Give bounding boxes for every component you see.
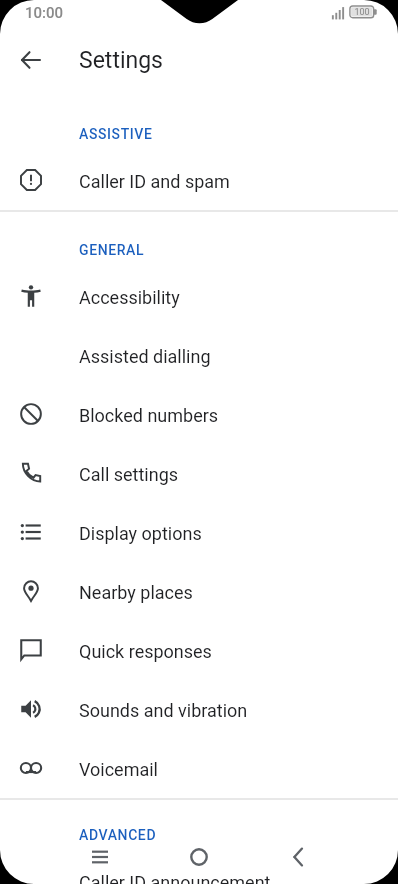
button[interactable]: Back	[7, 36, 55, 84]
staticText: Caller ID and spam	[79, 171, 230, 192]
staticText: Blocked numbers	[79, 405, 219, 426]
staticText: 100	[352, 7, 372, 18]
staticText: Nearby places	[79, 582, 193, 603]
button[interactable]: Display options	[0, 502, 398, 561]
button[interactable]: Accessibility	[0, 266, 398, 325]
button[interactable]: Nearby places	[0, 561, 398, 620]
staticText: Quick responses	[79, 641, 212, 662]
staticText: ASSISTIVE	[79, 126, 153, 142]
staticText: ADVANCED	[79, 827, 157, 843]
button[interactable]: Recent apps	[76, 833, 124, 881]
button[interactable]: Back	[274, 833, 322, 881]
button[interactable]: Voicemail	[0, 738, 398, 797]
staticText: Accessibility	[79, 287, 180, 308]
staticText: Call settings	[79, 464, 179, 485]
button[interactable]: Sounds and vibration	[0, 679, 398, 738]
button[interactable]: Call settings	[0, 443, 398, 502]
button[interactable]: Caller ID and spam	[0, 150, 398, 209]
staticText: Voicemail	[79, 759, 158, 780]
staticText: Display options	[79, 523, 202, 544]
staticText: Caller ID announcement	[79, 872, 271, 884]
staticText: 10:00	[25, 4, 64, 22]
button[interactable]: Assisted dialling	[0, 325, 398, 384]
button[interactable]: Home	[175, 833, 223, 881]
button[interactable]: Caller ID announcement	[0, 851, 398, 884]
button[interactable]: Quick responses	[0, 620, 398, 679]
staticText: Settings	[79, 47, 163, 74]
staticText: Sounds and vibration	[79, 700, 248, 721]
staticText: Assisted dialling	[79, 346, 211, 367]
staticText: GENERAL	[79, 242, 145, 258]
button[interactable]: Blocked numbers	[0, 384, 398, 443]
